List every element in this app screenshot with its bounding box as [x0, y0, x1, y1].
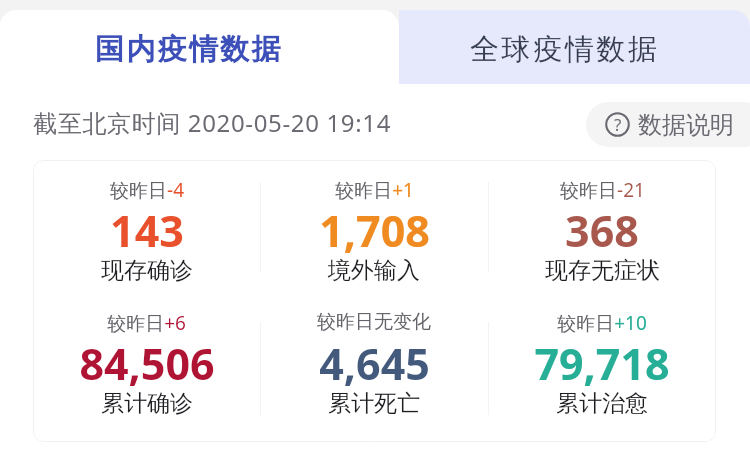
staticText: 境外输入 — [328, 256, 420, 285]
staticText: 较昨日无变化 — [317, 310, 431, 334]
staticText: 1,708 — [319, 201, 430, 260]
staticText: 国内疫情数据 — [95, 31, 283, 68]
button[interactable]: 全球疫情数据 — [375, 10, 750, 84]
button[interactable]: 国内疫情数据 — [0, 10, 375, 84]
staticText: 368 — [565, 201, 639, 260]
staticText: 累计治愈 — [556, 389, 648, 418]
staticText: 4,645 — [319, 334, 430, 393]
button[interactable]: ? — [586, 102, 750, 147]
staticText: 143 — [110, 201, 184, 260]
staticText: 现存确诊 — [101, 256, 193, 285]
staticText: ? — [614, 113, 622, 136]
staticText: 累计死亡 — [328, 389, 420, 418]
staticText: 79,718 — [534, 334, 670, 393]
staticText: 84,506 — [79, 334, 215, 393]
staticText: 较昨日+1 — [335, 177, 414, 203]
staticText: 现存无症状 — [545, 256, 660, 285]
staticText: 较昨日-21 — [560, 177, 645, 203]
staticText: 累计确诊 — [101, 389, 193, 418]
staticText: 较昨日+6 — [107, 310, 186, 336]
staticText: 较昨日+10 — [557, 310, 647, 336]
staticText: 较昨日-4 — [110, 177, 184, 203]
staticText: 全球疫情数据 — [470, 31, 660, 68]
staticText: 数据说明 — [638, 110, 734, 140]
staticText: 截至北京时间 2020-05-20 19:14 — [33, 106, 392, 139]
